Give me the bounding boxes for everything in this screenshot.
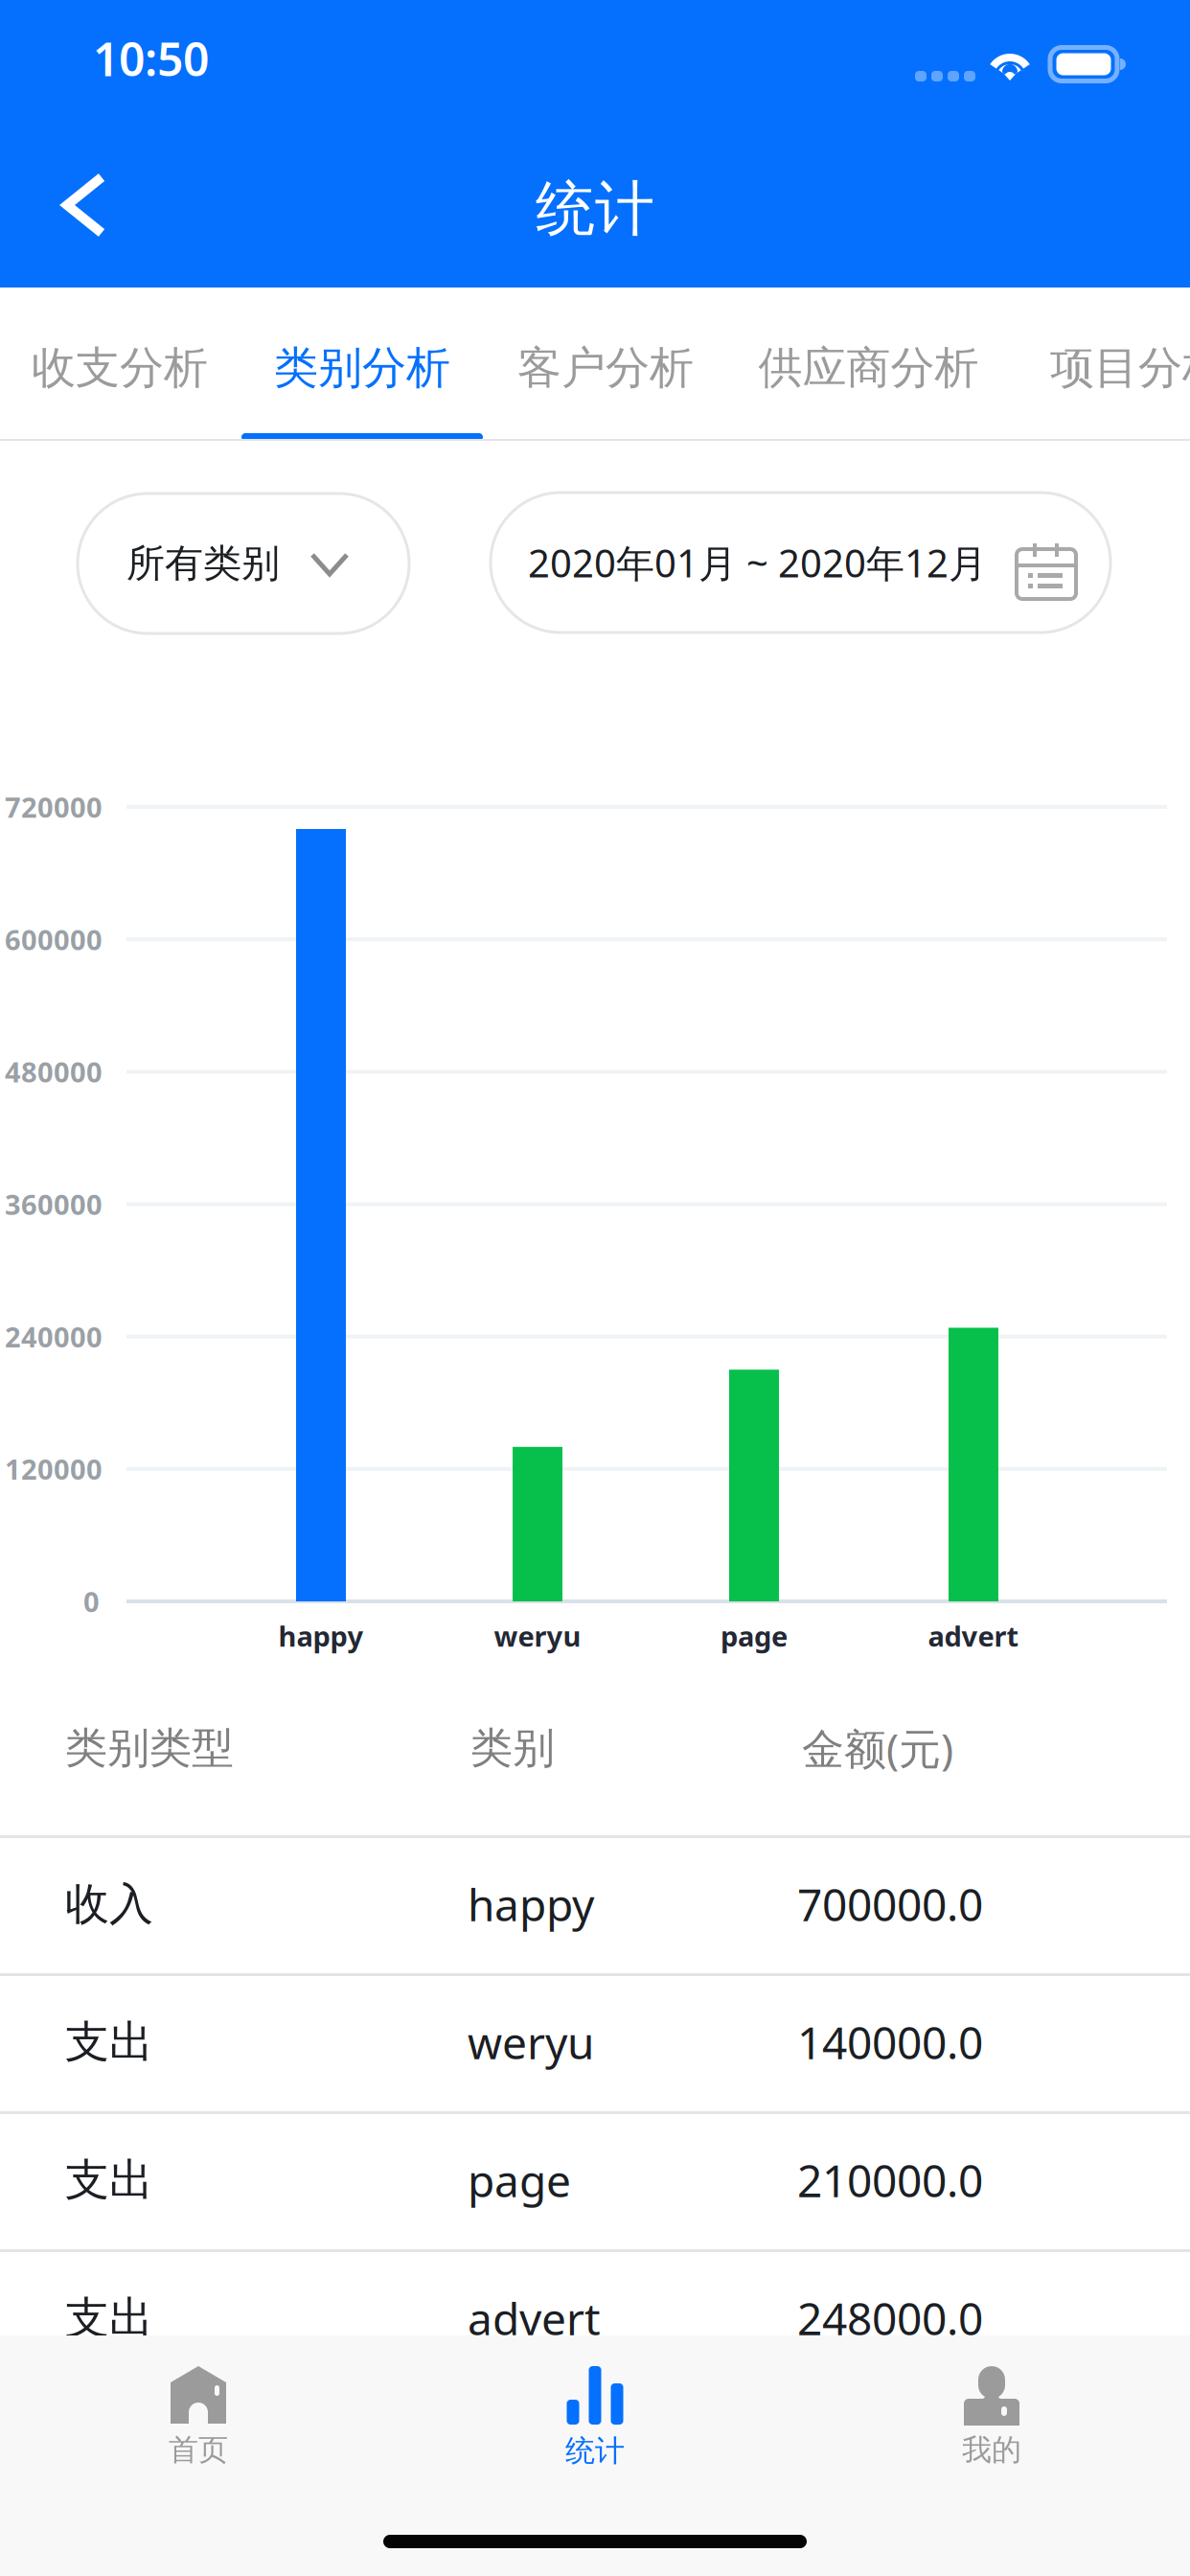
button[interactable]: 2020年01月 ~ 2020年12月 xyxy=(491,493,1110,632)
staticText: weryu xyxy=(468,2012,594,2072)
button[interactable]: 收入 xyxy=(0,1835,1190,1973)
staticText: 248000.0 xyxy=(797,2288,983,2348)
staticText: happy xyxy=(468,1874,594,1934)
staticText: 统计 xyxy=(536,171,654,246)
staticText: 720000 xyxy=(5,788,103,826)
staticText: 首页 xyxy=(169,2431,228,2469)
staticText: 120000 xyxy=(5,1450,103,1488)
staticText: 供应商分析 xyxy=(758,340,979,396)
button[interactable]: 类别分析 xyxy=(77,330,648,406)
staticText: page xyxy=(721,1617,788,1655)
staticText: 支出 xyxy=(65,2152,153,2208)
staticText: 支出 xyxy=(65,2290,153,2346)
staticText: 客户分析 xyxy=(517,340,694,396)
button[interactable]: 我的 xyxy=(793,2366,1190,2481)
staticText: weryu xyxy=(494,1617,581,1655)
button[interactable]: 统计 xyxy=(397,2366,793,2481)
staticText: 类别类型 xyxy=(65,1721,234,1775)
staticText: 700000.0 xyxy=(797,1874,983,1934)
staticText: 210000.0 xyxy=(797,2150,983,2210)
button[interactable]: 供应商分析 xyxy=(560,330,1178,406)
button[interactable]: 首页 xyxy=(0,2366,397,2481)
staticText: 我的 xyxy=(962,2431,1021,2469)
staticText: 10:50 xyxy=(93,27,209,90)
staticText: happy xyxy=(278,1617,364,1655)
button[interactable]: 客户分析 xyxy=(320,330,891,406)
button[interactable]: 所有类别 xyxy=(78,494,409,633)
staticText: 支出 xyxy=(65,2014,153,2070)
staticText: page xyxy=(468,2150,571,2210)
staticText: 所有类别 xyxy=(126,539,280,588)
button[interactable]: 支出 xyxy=(0,2111,1190,2249)
staticText: 480000 xyxy=(5,1053,103,1091)
staticText: 600000 xyxy=(5,920,103,958)
button[interactable]: 收支分析 xyxy=(0,330,405,406)
staticText: 360000 xyxy=(5,1185,103,1223)
staticText: 140000.0 xyxy=(797,2012,983,2072)
staticText: 项目分析 xyxy=(1050,340,1190,396)
staticText: 统计 xyxy=(565,2432,625,2470)
staticText: 240000 xyxy=(5,1318,103,1355)
staticText: 2020年01月 ~ 2020年12月 xyxy=(528,536,987,589)
staticText: 类别 xyxy=(470,1721,555,1775)
staticText: 类别分析 xyxy=(274,340,450,396)
staticText: 0 xyxy=(83,1582,100,1620)
staticText: 金额(元) xyxy=(802,1719,953,1777)
button[interactable]: 支出 xyxy=(0,2249,1190,2387)
button[interactable]: 返回 xyxy=(17,152,151,258)
staticText: advert xyxy=(928,1617,1019,1655)
staticText: advert xyxy=(468,2288,601,2348)
staticText: 收支分析 xyxy=(32,340,208,396)
button[interactable]: 项目分析 xyxy=(853,330,1190,406)
staticText: 收入 xyxy=(65,1876,153,1932)
button[interactable]: 支出 xyxy=(0,1973,1190,2111)
